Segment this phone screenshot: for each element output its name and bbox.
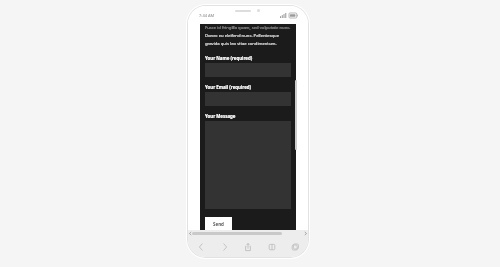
button[interactable]: Tabs — [289, 241, 301, 253]
staticText: 7:44 AM — [199, 13, 215, 18]
staticText: Your Message — [205, 113, 236, 119]
staticText: gravida quis leo vitae condimentum. — [205, 41, 277, 47]
button[interactable]: Forward — [219, 241, 231, 253]
staticText: Donec eu eleifend nunc. Pellentesque — [205, 33, 280, 39]
staticText: Send — [213, 221, 224, 227]
staticText: Your Email (required) — [205, 84, 252, 90]
button[interactable]: Back — [195, 241, 207, 253]
button[interactable]: Send — [205, 217, 232, 230]
button[interactable]: Share — [242, 241, 254, 253]
staticText: Fusce id fringilla quam, sed vulputate n… — [205, 25, 291, 31]
staticText: Your Name (required) — [205, 55, 253, 61]
button[interactable]: Bookmarks — [266, 241, 278, 253]
